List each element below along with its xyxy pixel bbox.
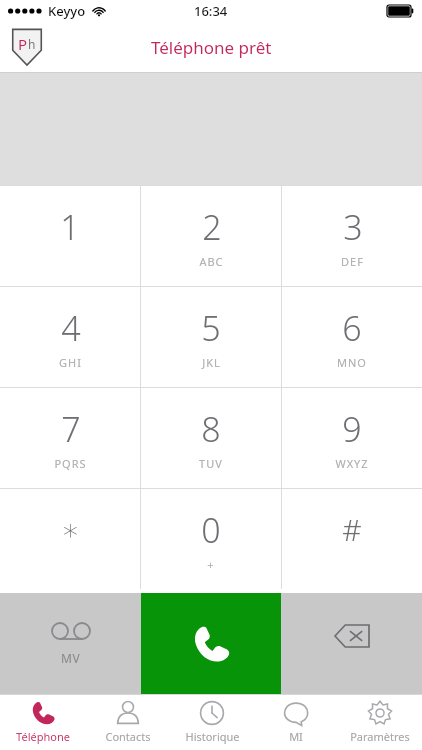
button[interactable]: Téléphone [0,694,85,750]
staticText: MV [61,650,81,666]
staticText: 8 [201,406,221,452]
staticText: P [18,34,28,54]
button[interactable]: 5 [141,287,281,387]
button[interactable]: 4 [0,287,140,387]
staticText: GHI [59,355,82,370]
staticText: 2 [202,204,222,250]
button[interactable]: Contacts [85,694,170,750]
button[interactable]: # [282,489,422,589]
staticText: JKL [202,355,221,370]
button[interactable]: ∗ [0,489,140,589]
staticText: Historique [185,729,240,744]
staticText: DEF [341,254,364,269]
button[interactable]: Phone app logo [10,27,44,67]
staticText: Keyyo [48,2,86,20]
staticText: Téléphone [16,729,70,744]
staticText: # [342,509,362,550]
button[interactable]: MV [0,593,141,694]
staticText: 6 [342,305,362,351]
staticText: Contacts [105,729,151,744]
staticText: 5 [201,305,221,351]
staticText: PQRS [54,456,87,471]
staticText: ABC [199,254,224,269]
button[interactable]: 9 [282,388,422,488]
button[interactable]: Call [141,593,281,694]
staticText: h [28,36,36,52]
button[interactable]: 1 [0,186,140,286]
button[interactable]: Paramètres [338,694,422,750]
staticText: MNO [337,355,367,370]
button[interactable]: 7 [0,388,140,488]
staticText: 0 [201,507,221,553]
staticText: + [207,557,215,572]
button[interactable]: Backspace [281,593,422,694]
button[interactable]: MI [254,694,338,750]
button[interactable]: 8 [141,388,281,488]
staticText: ∗ [61,512,80,547]
staticText: 7 [61,406,81,452]
staticText: 3 [343,204,363,250]
button[interactable]: Historique [170,694,254,750]
button[interactable]: 0 [141,489,281,589]
button[interactable]: 6 [282,287,422,387]
staticText: 16:34 [194,2,228,20]
staticText: TUV [199,456,223,471]
staticText: WXYZ [335,456,369,471]
button[interactable]: 3 [282,186,422,286]
staticText: MI [289,729,303,744]
staticText: Téléphone prêt [151,36,272,59]
button[interactable]: 2 [141,186,281,286]
staticText: 1 [60,204,80,250]
staticText: Paramètres [350,729,410,744]
staticText: 9 [342,406,362,452]
staticText: 4 [61,305,81,351]
